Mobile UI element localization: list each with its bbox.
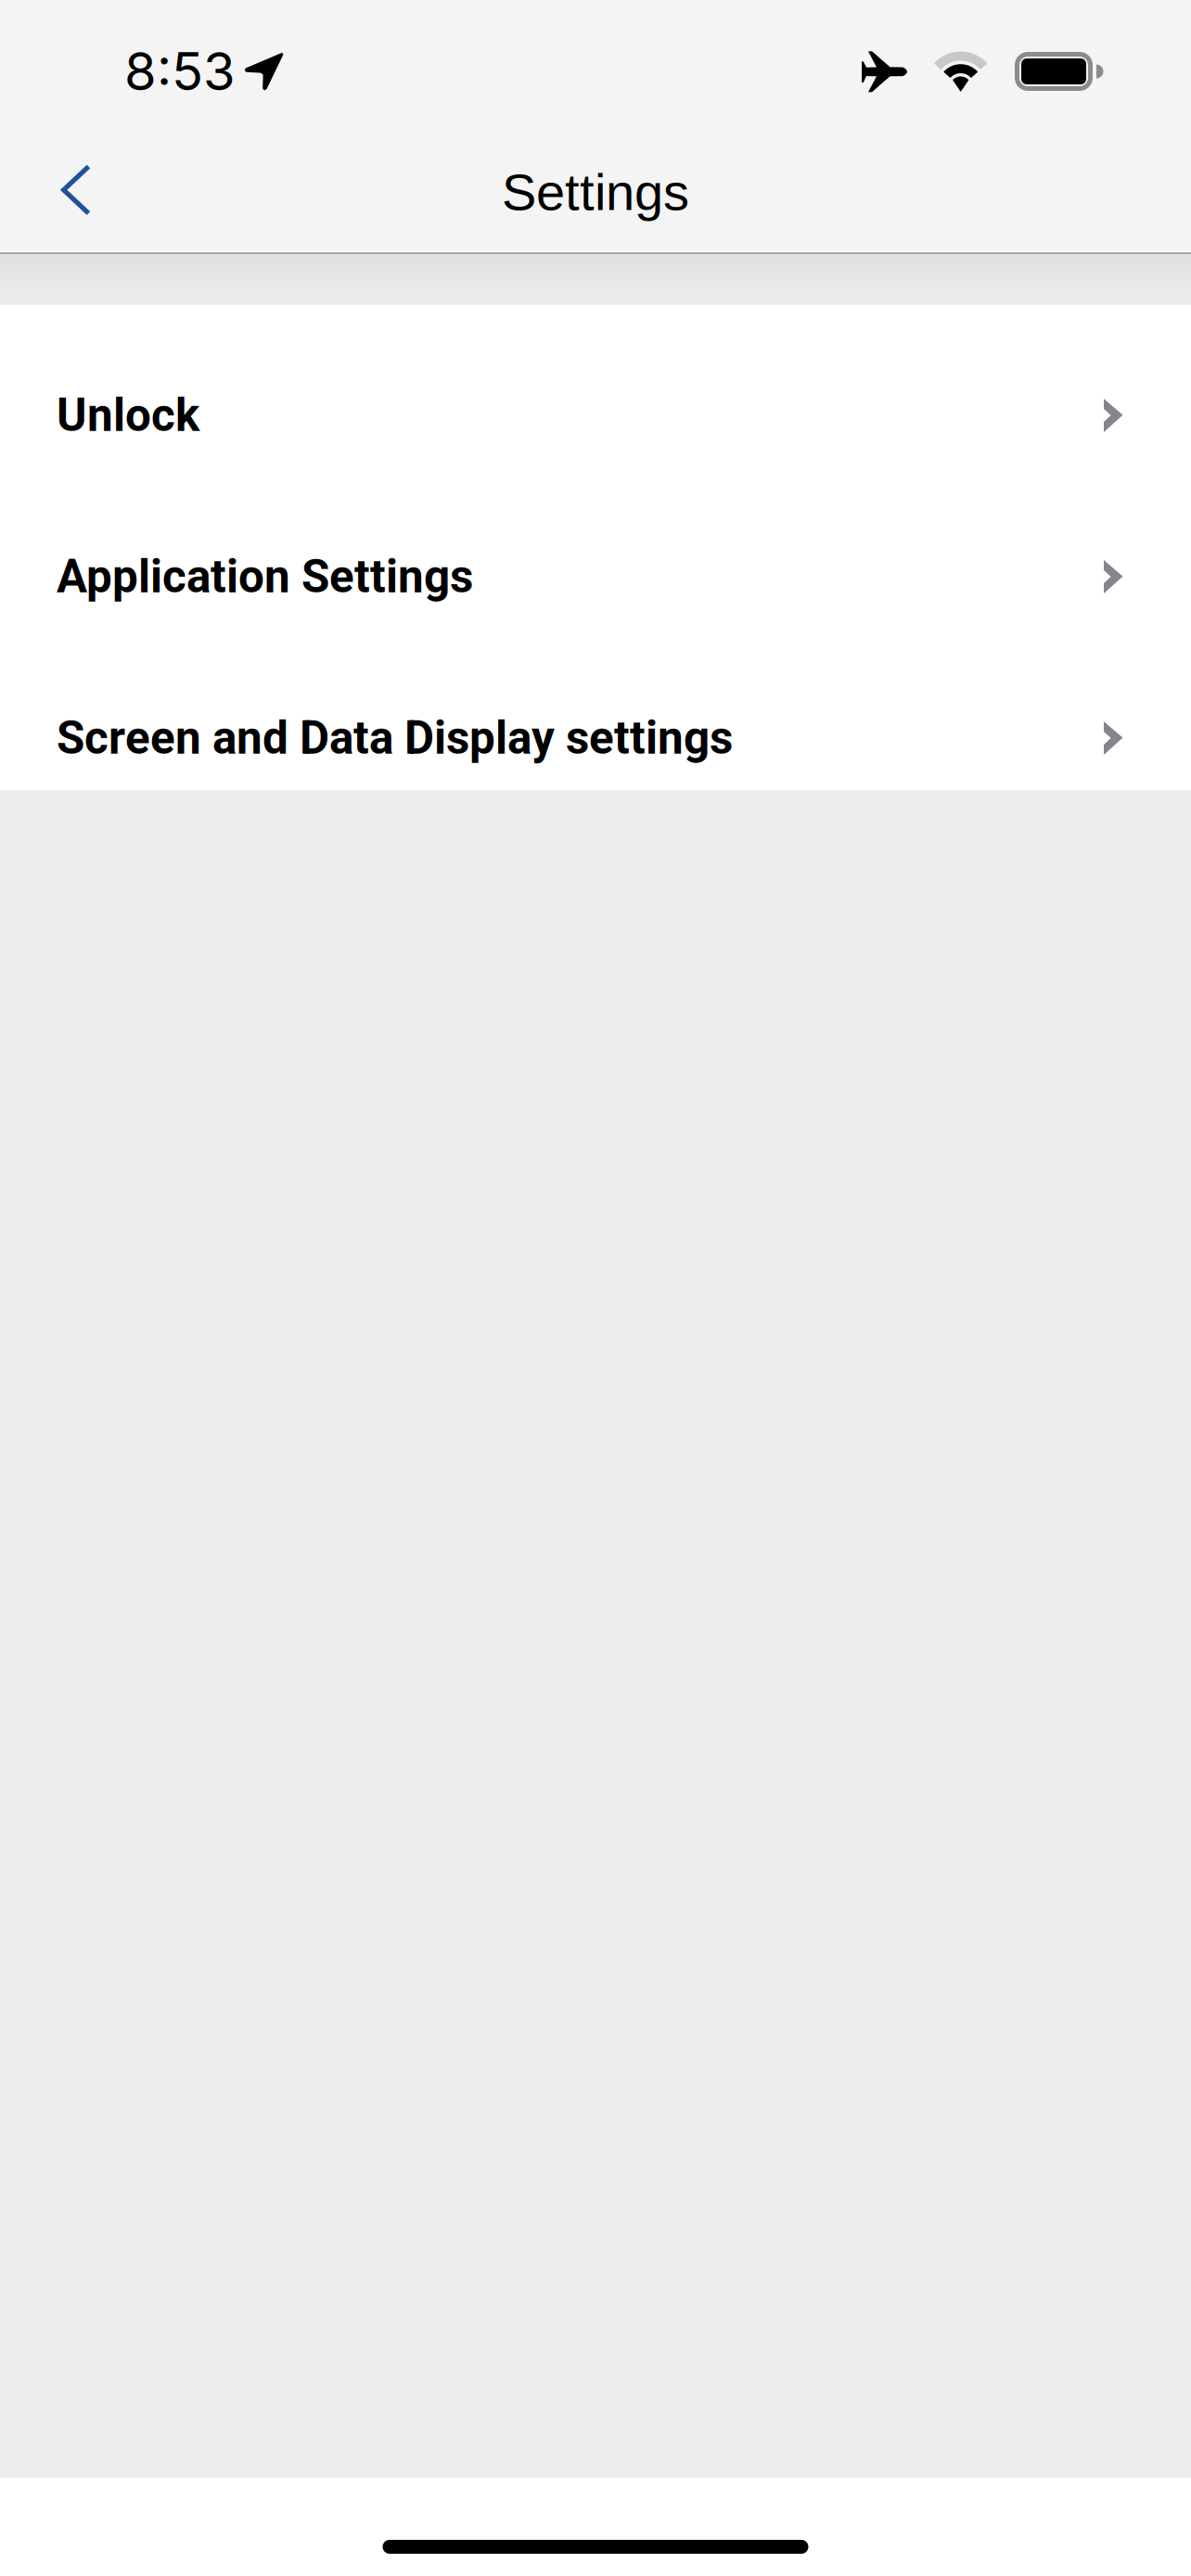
button[interactable]: Screen and Data Display settings: [0, 657, 1191, 819]
staticText: Unlock: [57, 389, 199, 442]
staticText: Screen and Data Display settings: [57, 711, 733, 765]
button[interactable]: Back: [27, 136, 125, 238]
staticText: Settings: [502, 163, 689, 221]
staticText: Application Settings: [57, 550, 473, 604]
staticText: 8:53: [124, 40, 236, 103]
button[interactable]: Application Settings: [0, 496, 1191, 657]
button[interactable]: Unlock: [0, 335, 1191, 496]
